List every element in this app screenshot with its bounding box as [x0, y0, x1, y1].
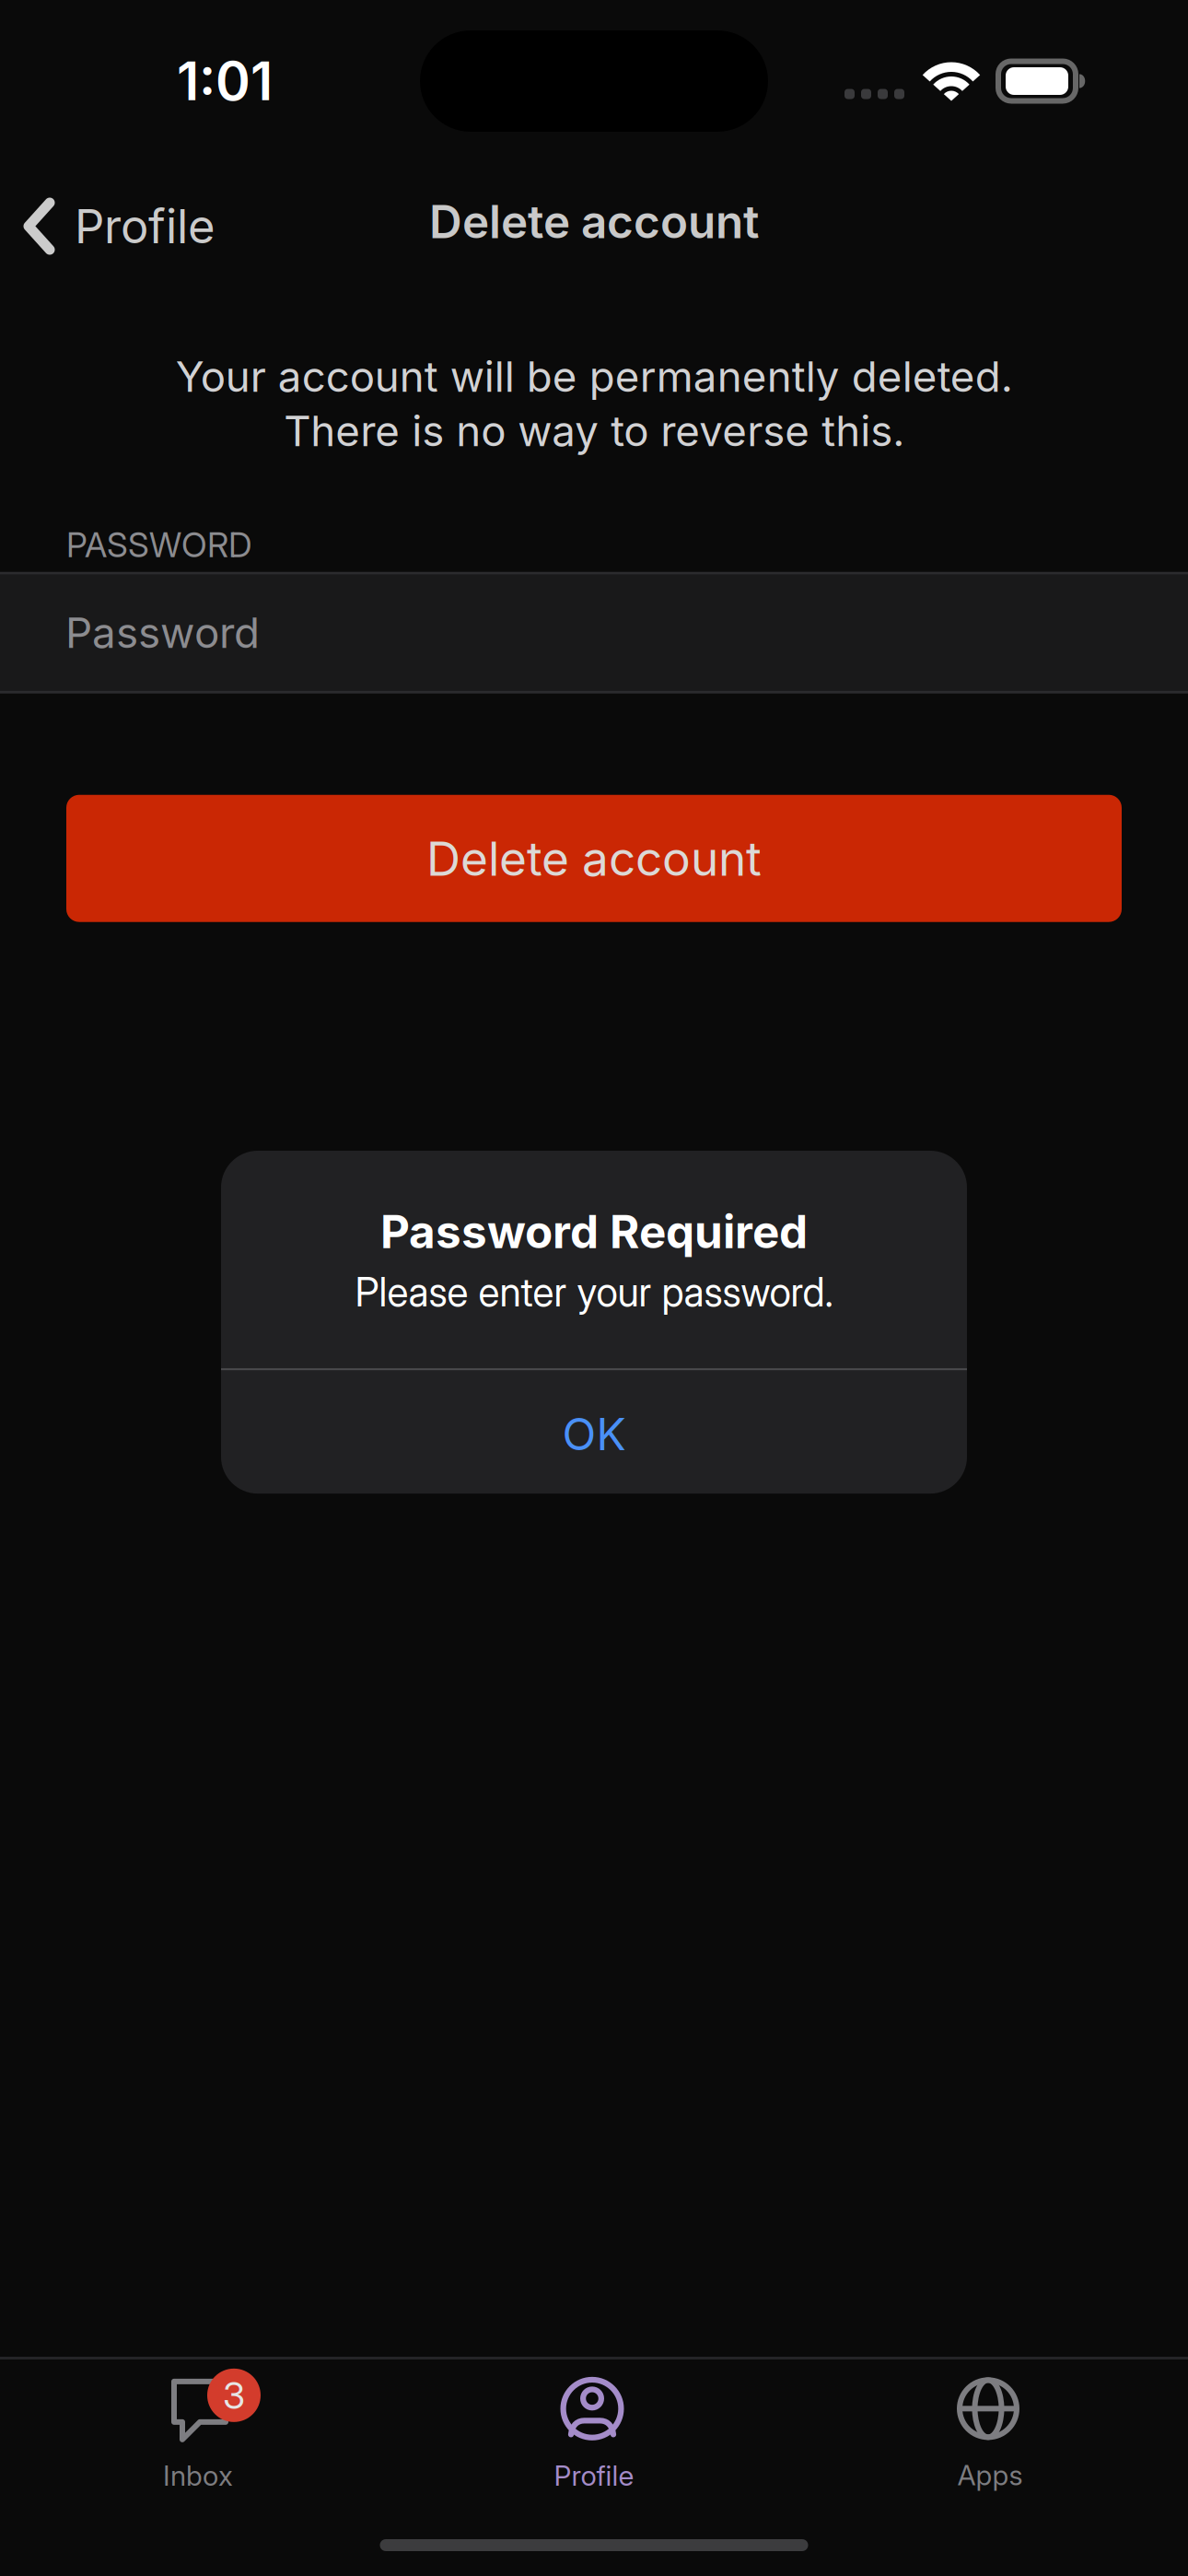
staticText: 1:01 — [177, 49, 273, 113]
staticText: PASSWORD — [66, 525, 252, 565]
button[interactable]: 3 — [0, 2368, 396, 2489]
staticText: 3 — [223, 2373, 245, 2418]
button[interactable]: Profile — [396, 2368, 792, 2489]
staticText: Your account will be permanently deleted… — [175, 351, 1013, 456]
staticText: Profile — [75, 198, 215, 254]
staticText: OK — [562, 1407, 626, 1461]
staticText: Apps — [957, 2458, 1023, 2492]
staticText: Password Required — [380, 1204, 808, 1259]
staticText: Delete account — [429, 194, 759, 249]
staticText: Please enter your password. — [355, 1268, 833, 1316]
button[interactable]: Delete account — [66, 795, 1122, 922]
staticText: Password — [65, 607, 260, 658]
staticText: Profile — [554, 2459, 634, 2492]
button[interactable]: Apps — [792, 2368, 1188, 2489]
staticText: Delete account — [426, 830, 762, 887]
button[interactable]: OK — [221, 1370, 967, 1494]
staticText: Inbox — [163, 2459, 233, 2492]
button[interactable]: Profile — [0, 178, 215, 265]
